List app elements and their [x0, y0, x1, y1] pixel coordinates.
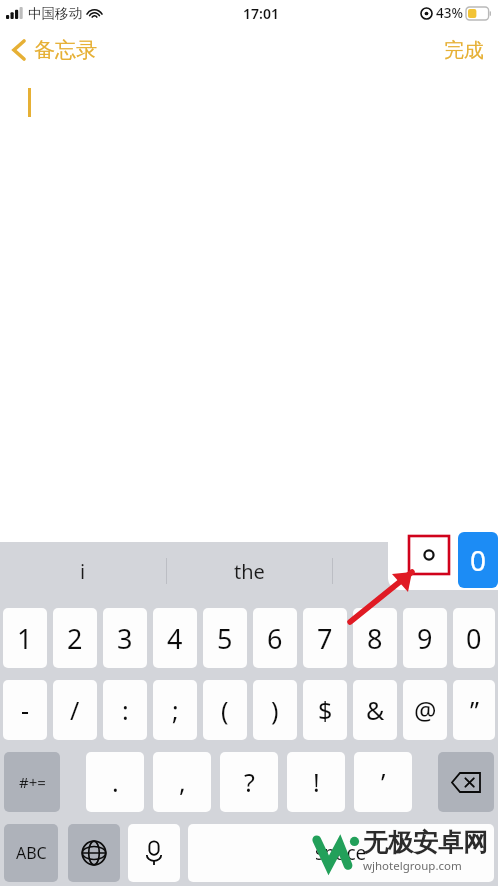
staticText: 0 [466, 620, 482, 657]
staticText: ? [244, 765, 255, 799]
staticText: @ [414, 693, 437, 727]
button[interactable]: 1 [3, 608, 47, 668]
staticText: ABC [16, 842, 47, 864]
staticText: 无极安卓网 [363, 827, 488, 858]
staticText: i [413, 558, 419, 585]
staticText: 8 [367, 620, 383, 657]
button[interactable]: . [86, 752, 144, 812]
button[interactable]: 备忘录 [10, 35, 97, 65]
button[interactable]: 6 [253, 608, 297, 668]
staticText: 7 [317, 620, 333, 657]
button[interactable]: i [333, 542, 498, 600]
button[interactable]: 8 [353, 608, 397, 668]
staticText: 9 [417, 620, 433, 657]
staticText: ( [221, 693, 229, 727]
staticText: $ [318, 693, 333, 727]
button[interactable]: , [153, 752, 211, 812]
button[interactable]: : [103, 680, 147, 740]
staticText: . [112, 765, 119, 799]
staticText: : [122, 693, 129, 727]
staticText: 3 [117, 620, 133, 657]
button[interactable]: ( [203, 680, 247, 740]
button[interactable]: @ [403, 680, 447, 740]
button[interactable]: 0 [458, 532, 498, 588]
staticText: ” [470, 693, 479, 727]
button[interactable]: 9 [403, 608, 447, 668]
button[interactable]: ) [253, 680, 297, 740]
button[interactable]: 2 [53, 608, 97, 668]
staticText: wjhotelgroup.com [363, 858, 462, 874]
button[interactable]: the [167, 542, 332, 600]
staticText: 17:01 [243, 4, 279, 23]
staticText: / [70, 693, 80, 727]
staticText: 5 [217, 620, 233, 657]
button[interactable]: ABC [4, 824, 58, 882]
button[interactable]: ! [287, 752, 345, 812]
staticText: 完成 [444, 38, 484, 63]
button[interactable]: 5 [203, 608, 247, 668]
staticText: space [315, 840, 367, 866]
button[interactable]: 4 [153, 608, 197, 668]
button[interactable]: Dictation [128, 824, 180, 882]
button[interactable]: $ [303, 680, 347, 740]
staticText: ) [271, 693, 279, 727]
staticText: , [179, 765, 186, 799]
button[interactable]: space [188, 824, 494, 882]
button[interactable]: / [53, 680, 97, 740]
button[interactable]: 7 [303, 608, 347, 668]
button[interactable]: Switch language [68, 824, 120, 882]
button[interactable]: i [0, 542, 166, 600]
button[interactable]: Delete [438, 752, 494, 812]
button[interactable]: 3 [103, 608, 147, 668]
staticText: 4 [167, 620, 183, 657]
button[interactable]: ’ [354, 752, 412, 812]
button[interactable]: #+= [4, 752, 60, 812]
staticText: 6 [267, 620, 283, 657]
staticText: i [80, 558, 86, 585]
staticText: 0 [470, 541, 487, 579]
button[interactable]: ; [153, 680, 197, 740]
button[interactable]: ? [220, 752, 278, 812]
button[interactable]: & [353, 680, 397, 740]
button[interactable]: - [3, 680, 47, 740]
staticText: 2 [67, 620, 83, 657]
staticText: 中国移动 [28, 5, 82, 22]
staticText: #+= [19, 772, 46, 792]
staticText: 1 [17, 620, 33, 657]
button[interactable]: 完成 [444, 38, 484, 63]
staticText: the [234, 558, 265, 585]
staticText: ’ [381, 765, 386, 799]
staticText: - [21, 693, 30, 727]
staticText: 43% [436, 4, 463, 22]
staticText: ; [172, 693, 179, 727]
button[interactable]: 0 [453, 608, 495, 668]
button[interactable]: ” [453, 680, 495, 740]
staticText: ! [313, 765, 320, 799]
staticText: & [366, 693, 385, 727]
staticText: 备忘录 [34, 37, 97, 63]
